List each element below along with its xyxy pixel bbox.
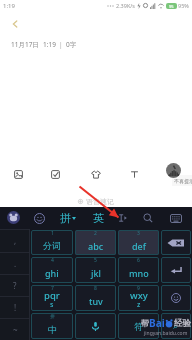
staticText: ?: [13, 280, 17, 291]
staticText: 分词: [43, 240, 61, 251]
staticText: wxy: [130, 289, 148, 302]
button[interactable]: 6: [118, 257, 159, 283]
button[interactable]: 英: [93, 211, 104, 225]
staticText: !: [14, 302, 17, 313]
staticText: s: [50, 300, 54, 310]
staticText: 7: [51, 285, 54, 292]
button[interactable]: 4: [31, 257, 73, 283]
staticText: 不再提示: [174, 178, 192, 184]
staticText: 拼: [50, 313, 55, 319]
staticText: 95%: [178, 2, 189, 9]
staticText: pqr: [44, 289, 60, 302]
button[interactable]: Input settings: [7, 211, 20, 224]
button[interactable]: ?: [0, 274, 30, 296]
button[interactable]: Emoticons: [161, 285, 191, 311]
staticText: 拼: [60, 211, 71, 225]
staticText: 1:19: [3, 2, 15, 10]
button[interactable]: 8: [75, 285, 116, 311]
button[interactable]: Enter: [161, 257, 191, 283]
button[interactable]: ,: [0, 229, 30, 252]
staticText: z: [137, 300, 141, 310]
button[interactable]: Insert image: [10, 166, 27, 183]
staticText: 经验: [174, 318, 191, 329]
button[interactable]: Hide keyboard: [169, 211, 183, 225]
button[interactable]: Symbols: [118, 313, 159, 339]
button[interactable]: Backspace: [161, 230, 191, 255]
button[interactable]: .: [0, 252, 30, 274]
button[interactable]: Checklist: [47, 166, 64, 183]
staticText: 4: [51, 257, 54, 264]
button[interactable]: 3: [118, 230, 159, 255]
staticText: 1: [51, 230, 54, 237]
staticText: 2.39K/s: [116, 2, 135, 9]
staticText: 符: [134, 321, 143, 332]
staticText: ~: [13, 324, 18, 335]
button[interactable]: Text format: [126, 166, 143, 183]
button[interactable]: Style: [87, 166, 104, 183]
staticText: 1:19: [43, 40, 56, 49]
staticText: ghi: [45, 267, 59, 279]
staticText: .: [14, 258, 17, 269]
staticText: tuv: [89, 295, 103, 307]
staticText: jkl: [91, 267, 101, 279]
staticText: 95: [169, 4, 174, 9]
button[interactable]: Search: [141, 211, 155, 225]
button[interactable]: Move cursor: [115, 211, 129, 225]
staticText: 9: [137, 285, 140, 292]
staticText: ,: [14, 235, 17, 246]
staticText: 语音速记: [86, 197, 114, 206]
button[interactable]: 5: [75, 257, 116, 283]
staticText: 0字: [66, 40, 77, 49]
button[interactable]: 2: [75, 230, 116, 255]
staticText: mno: [129, 267, 149, 279]
button[interactable]: Options: [161, 313, 191, 339]
staticText: 6: [137, 257, 140, 264]
staticText: jingyan.baidu.com: [144, 330, 188, 337]
staticText: 8: [94, 285, 97, 292]
staticText: |: [59, 40, 63, 49]
staticText: 英: [93, 211, 104, 225]
button[interactable]: ~: [0, 318, 30, 340]
button[interactable]: Voice input: [166, 163, 181, 178]
staticText: 2: [94, 230, 97, 237]
button[interactable]: 9: [118, 285, 159, 311]
staticText: abc: [88, 240, 104, 252]
staticText: ⌕: [173, 322, 179, 331]
staticText: 3: [137, 230, 140, 237]
button[interactable]: Back: [6, 15, 24, 33]
staticText: def: [132, 240, 146, 252]
button[interactable]: !: [0, 296, 30, 318]
button[interactable]: Emoji: [32, 211, 46, 225]
button[interactable]: 7: [31, 285, 73, 311]
staticText: 5: [94, 257, 97, 264]
button[interactable]: 1: [31, 230, 73, 255]
staticText: 帮: [141, 318, 149, 328]
button[interactable]: 拼: [31, 313, 73, 339]
button[interactable]: 拼: [60, 211, 76, 225]
staticText: Bai: [149, 316, 165, 330]
staticText: 11月17日: [11, 40, 39, 49]
button[interactable]: Space: [75, 313, 116, 339]
staticText: 中: [48, 324, 57, 335]
